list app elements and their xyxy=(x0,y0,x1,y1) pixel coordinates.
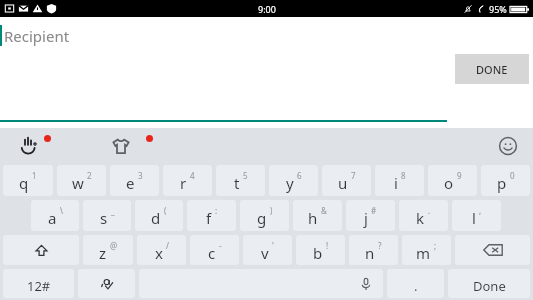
staticText: @ xyxy=(110,240,118,251)
staticText: q xyxy=(19,173,29,193)
staticText: p xyxy=(497,173,507,193)
staticText: 9:00 xyxy=(258,3,276,15)
staticText: m xyxy=(416,243,431,263)
staticText: j xyxy=(364,208,368,228)
staticText: 3 xyxy=(138,170,143,181)
button[interactable]: q xyxy=(3,165,53,196)
staticText: & xyxy=(321,205,327,216)
button[interactable]: e xyxy=(110,165,159,196)
staticText: 2 xyxy=(87,170,92,181)
button[interactable]: c xyxy=(190,235,239,265)
staticText: t xyxy=(234,173,240,193)
button[interactable]: r xyxy=(163,165,212,196)
staticText: 1 xyxy=(32,170,37,181)
staticText: g xyxy=(257,208,267,228)
staticText: \ xyxy=(60,205,63,216)
button[interactable]: 12# xyxy=(3,269,74,298)
staticText: ! xyxy=(326,240,329,251)
button[interactable]: a xyxy=(31,200,79,231)
staticText: # xyxy=(371,205,377,216)
button[interactable]: v xyxy=(243,235,292,265)
button[interactable]: m xyxy=(402,235,451,265)
button[interactable]: h xyxy=(293,200,342,231)
staticText: , xyxy=(479,205,482,216)
button[interactable]: n xyxy=(349,235,398,265)
staticText: ( xyxy=(164,205,167,216)
button[interactable]: Done xyxy=(448,269,530,298)
staticText: . xyxy=(428,205,431,216)
button[interactable]: l xyxy=(452,200,501,231)
staticText: ) xyxy=(270,205,273,216)
button[interactable]: o xyxy=(428,165,477,196)
button[interactable]: s xyxy=(83,200,131,231)
staticText: 8 xyxy=(401,170,406,181)
staticText: l xyxy=(472,208,476,228)
staticText: z xyxy=(99,243,107,263)
staticText: x xyxy=(155,243,163,263)
staticText: c xyxy=(208,243,216,263)
staticText: n xyxy=(365,243,375,263)
button[interactable]: p xyxy=(481,165,530,196)
staticText: s xyxy=(100,208,108,228)
button[interactable]: k xyxy=(399,200,448,231)
staticText: Done xyxy=(473,277,506,295)
button[interactable]: z xyxy=(83,235,133,265)
staticText: o xyxy=(444,173,454,193)
staticText: w xyxy=(72,173,84,193)
button[interactable]: Change language xyxy=(78,269,135,298)
staticText: 9 xyxy=(457,170,462,181)
button[interactable]: d xyxy=(135,200,183,231)
button[interactable]: Handwriting input xyxy=(8,130,50,162)
staticText: ' xyxy=(272,240,274,251)
staticText: 4 xyxy=(190,170,195,181)
button[interactable]: x xyxy=(137,235,186,265)
button[interactable]: Shift xyxy=(3,235,79,265)
staticText: d xyxy=(151,208,161,228)
staticText: 0 xyxy=(510,170,515,181)
button[interactable]: Stickers xyxy=(100,130,142,162)
staticText: Recipient xyxy=(4,26,70,46)
staticText: ? xyxy=(378,240,382,251)
button[interactable]: t xyxy=(216,165,265,196)
button[interactable]: w xyxy=(57,165,106,196)
staticText: 5 xyxy=(243,170,248,181)
staticText: / xyxy=(166,240,169,251)
staticText: f xyxy=(206,208,212,228)
staticText: y xyxy=(286,173,294,193)
other: Voice input xyxy=(357,275,375,293)
staticText: k xyxy=(416,208,425,228)
staticText: 95% xyxy=(489,3,507,15)
staticText: v xyxy=(261,243,269,263)
staticText: 7 xyxy=(351,170,356,181)
staticText: a xyxy=(48,208,57,228)
staticText: 12# xyxy=(27,277,51,295)
staticText: e xyxy=(126,173,135,193)
staticText: . xyxy=(414,277,418,295)
button[interactable]: f xyxy=(187,200,236,231)
staticText: 6 xyxy=(297,170,302,181)
button[interactable]: i xyxy=(375,165,424,196)
button[interactable]: u xyxy=(322,165,371,196)
button[interactable]: b xyxy=(296,235,345,265)
staticText: i xyxy=(394,173,398,193)
staticText: u xyxy=(338,173,348,193)
button[interactable]: Backspace xyxy=(455,235,530,265)
button[interactable]: y xyxy=(269,165,318,196)
button[interactable]: Space xyxy=(139,269,383,298)
staticText: h xyxy=(308,208,318,228)
staticText: b xyxy=(313,243,323,263)
staticText: ; xyxy=(434,240,437,251)
staticText: DONE xyxy=(476,62,508,77)
button[interactable]: j xyxy=(346,200,395,231)
button[interactable]: DONE xyxy=(455,54,529,84)
button[interactable]: g xyxy=(240,200,289,231)
staticText: : xyxy=(215,205,218,216)
button[interactable]: . xyxy=(387,269,444,298)
staticText: r xyxy=(180,173,187,193)
button[interactable]: Emoji xyxy=(489,130,527,162)
staticText: - xyxy=(219,240,222,251)
staticText: _ xyxy=(111,205,115,216)
